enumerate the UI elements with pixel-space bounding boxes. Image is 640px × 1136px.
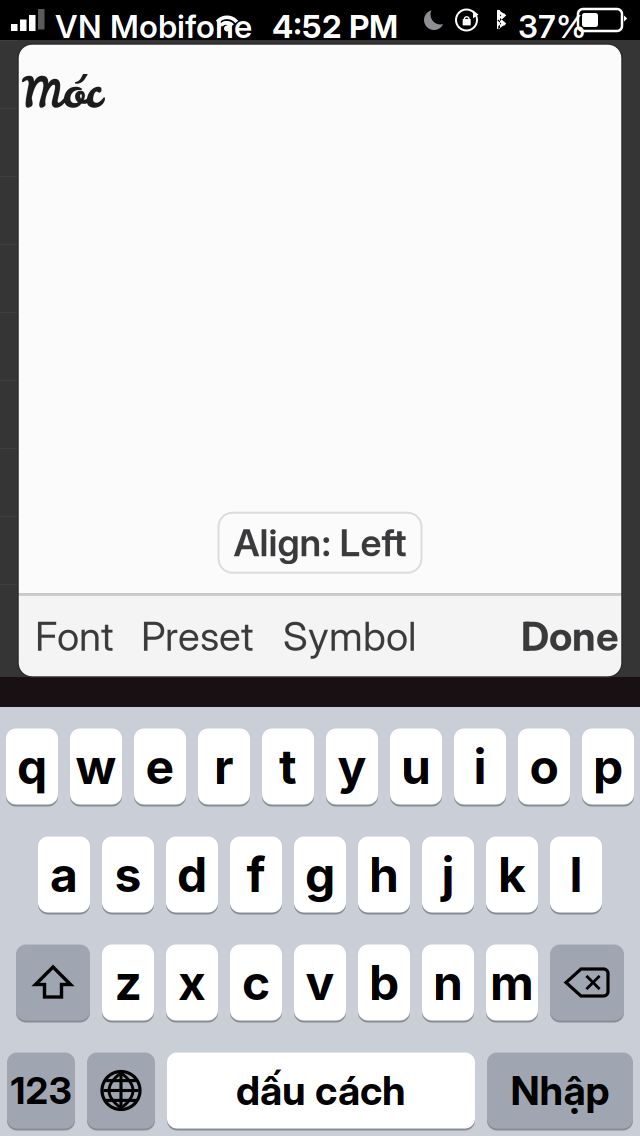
staticText: c xyxy=(242,953,270,1012)
staticText: w xyxy=(75,737,116,796)
staticText: y xyxy=(337,737,366,796)
staticText: 4:52 PM xyxy=(272,7,398,46)
staticText: r xyxy=(214,737,234,796)
button[interactable]: x xyxy=(166,944,218,1020)
button[interactable]: e xyxy=(134,728,186,804)
staticText: j xyxy=(441,845,454,904)
button[interactable]: d xyxy=(166,836,218,912)
button[interactable]: m xyxy=(486,944,538,1020)
staticText: VN Mobifone xyxy=(55,7,252,46)
button[interactable]: g xyxy=(294,836,346,912)
button[interactable]: l xyxy=(550,836,602,912)
button[interactable]: Done xyxy=(505,595,635,677)
staticText: f xyxy=(246,845,265,904)
staticText: o xyxy=(529,737,558,796)
button[interactable]: Nhập xyxy=(487,1052,633,1128)
staticText: s xyxy=(114,845,141,904)
button[interactable]: f xyxy=(230,836,282,912)
button[interactable]: j xyxy=(422,836,474,912)
button[interactable]: b xyxy=(358,944,410,1020)
staticText: Font xyxy=(35,612,114,660)
button[interactable]: k xyxy=(486,836,538,912)
staticText: v xyxy=(305,953,334,1012)
staticText: p xyxy=(593,737,623,796)
button[interactable]: v xyxy=(294,944,346,1020)
staticText: b xyxy=(369,953,399,1012)
button[interactable]: Shift xyxy=(16,944,90,1020)
staticText: h xyxy=(369,845,399,904)
staticText: z xyxy=(114,953,141,1012)
staticText: x xyxy=(178,953,206,1012)
button[interactable]: Delete xyxy=(550,944,624,1020)
button[interactable]: a xyxy=(38,836,90,912)
staticText: dấu cách xyxy=(236,1066,406,1115)
button[interactable]: t xyxy=(262,728,314,804)
button[interactable]: h xyxy=(358,836,410,912)
button[interactable]: 123 xyxy=(7,1052,75,1128)
button[interactable]: u xyxy=(390,728,442,804)
button[interactable]: o xyxy=(518,728,570,804)
staticText: k xyxy=(498,845,526,904)
button[interactable]: Preset xyxy=(125,595,270,677)
button[interactable]: Align: Left xyxy=(218,513,421,573)
button[interactable]: Symbol xyxy=(267,595,432,677)
staticText: Symbol xyxy=(283,612,416,660)
staticText: Done xyxy=(521,612,619,660)
staticText: 123 xyxy=(10,1068,71,1113)
staticText: n xyxy=(433,953,463,1012)
button[interactable]: n xyxy=(422,944,474,1020)
staticText: l xyxy=(569,845,582,904)
staticText: Align: Left xyxy=(233,520,406,565)
button[interactable]: Font xyxy=(19,595,130,677)
staticText: Móc xyxy=(22,64,102,121)
staticText: g xyxy=(305,845,335,904)
staticText: 37% xyxy=(518,7,586,46)
staticText: Preset xyxy=(141,612,254,660)
staticText: a xyxy=(50,845,78,904)
staticText: q xyxy=(17,737,47,796)
button[interactable]: i xyxy=(454,728,506,804)
button[interactable]: q xyxy=(6,728,58,804)
button[interactable]: r xyxy=(198,728,250,804)
button[interactable]: p xyxy=(582,728,634,804)
staticText: d xyxy=(177,845,207,904)
staticText: u xyxy=(401,737,431,796)
staticText: i xyxy=(473,737,486,796)
button[interactable]: Next keyboard xyxy=(87,1052,155,1128)
button[interactable]: s xyxy=(102,836,154,912)
staticText: Nhập xyxy=(510,1066,609,1115)
staticText: m xyxy=(490,953,534,1012)
staticText: t xyxy=(279,737,297,796)
button[interactable]: c xyxy=(230,944,282,1020)
button[interactable]: y xyxy=(326,728,378,804)
button[interactable]: dấu cách xyxy=(167,1052,475,1128)
button[interactable]: w xyxy=(70,728,122,804)
button[interactable]: z xyxy=(102,944,154,1020)
staticText: e xyxy=(145,737,174,796)
